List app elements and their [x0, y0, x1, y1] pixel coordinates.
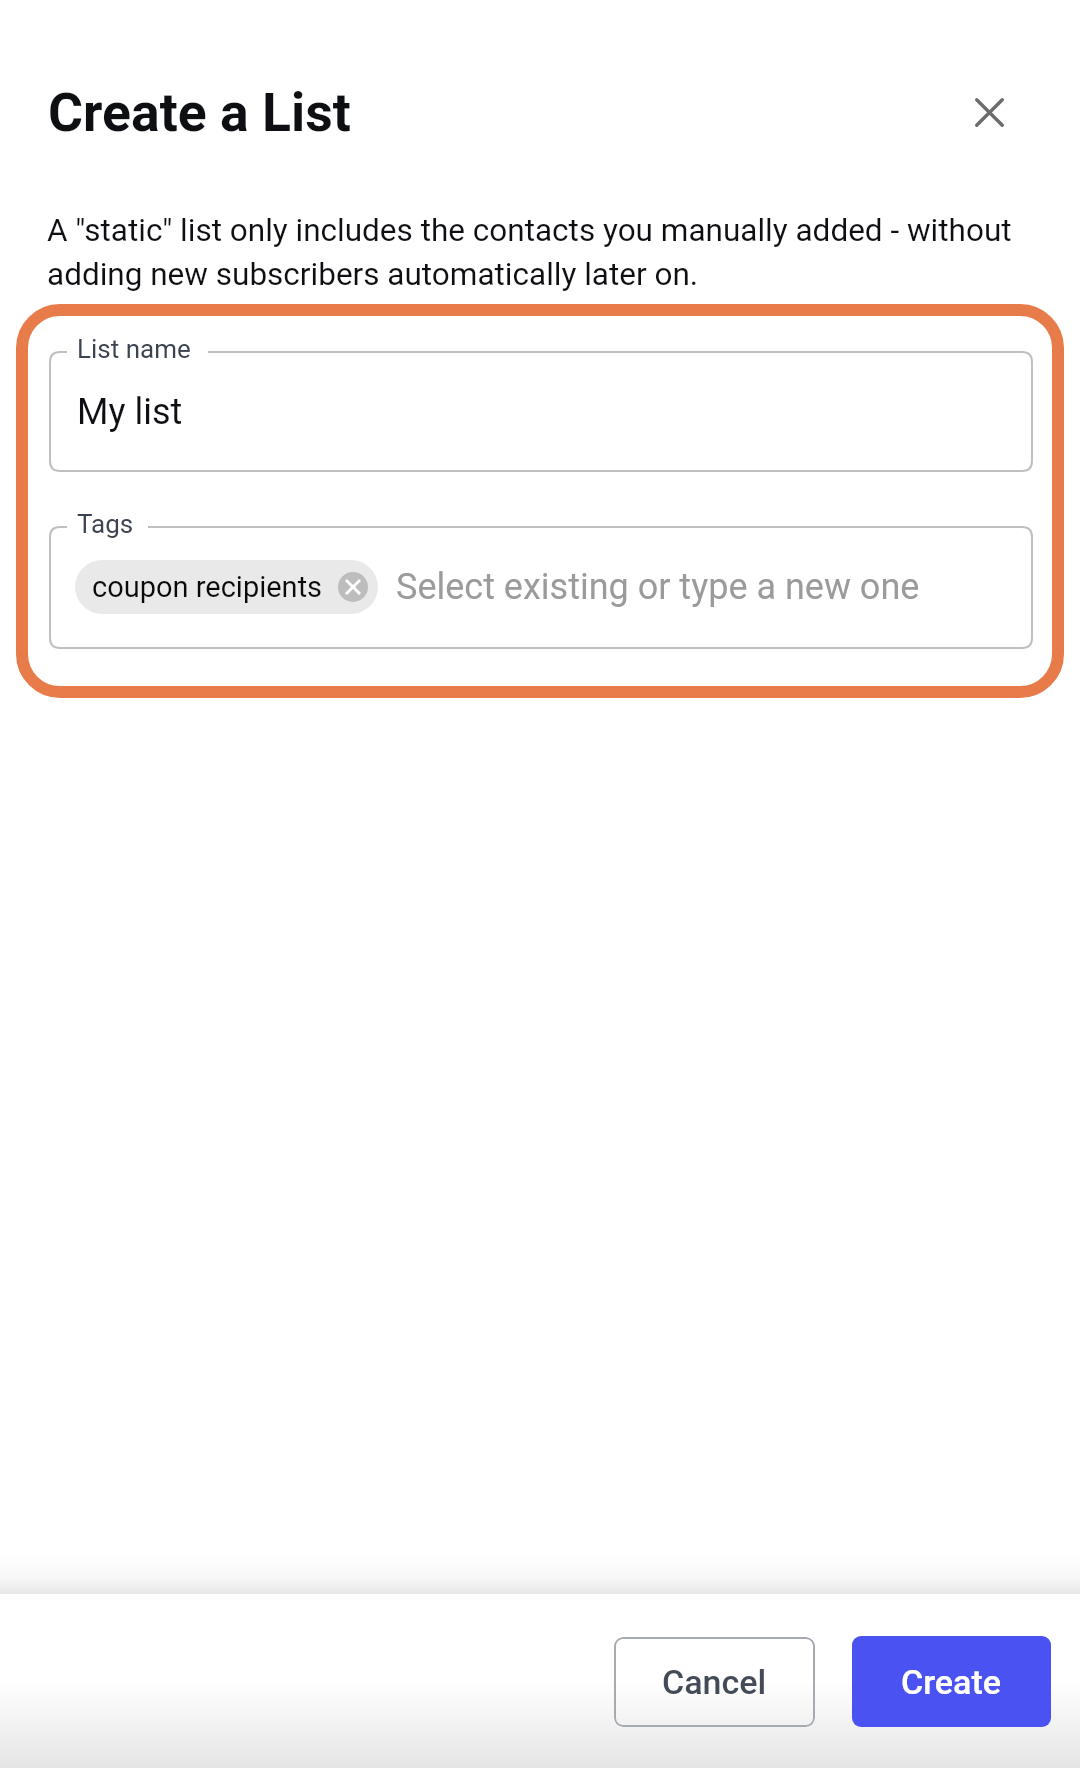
staticText: Select existing or type a new one — [396, 566, 920, 608]
staticText: Tags — [77, 509, 134, 539]
button[interactable]: coupon recipients — [75, 560, 378, 614]
staticText: List name — [77, 334, 191, 364]
staticText: My list — [77, 391, 183, 433]
button[interactable]: Close — [957, 80, 1021, 144]
button[interactable]: Create — [852, 1636, 1051, 1727]
button[interactable]: Remove tag — [338, 572, 368, 602]
button[interactable]: Cancel — [614, 1637, 815, 1727]
staticText: coupon recipients — [92, 570, 323, 604]
staticText: Cancel — [662, 1662, 767, 1702]
staticText: A "static" list only includes the contac… — [47, 212, 1039, 293]
staticText: Create — [901, 1662, 1002, 1702]
staticText: Create a List — [48, 81, 351, 144]
